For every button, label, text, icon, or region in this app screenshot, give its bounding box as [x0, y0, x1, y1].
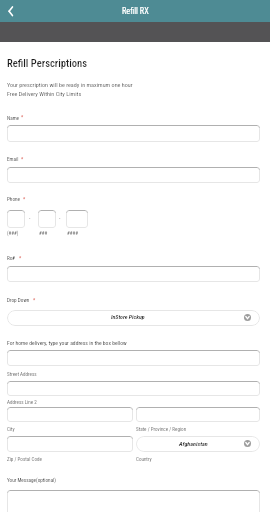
staticText: Refill RX [122, 6, 149, 16]
button[interactable]: Back [3, 3, 19, 19]
button[interactable] [136, 407, 260, 422]
staticText: (###) [7, 230, 19, 236]
staticText: State / Province / Region [136, 426, 187, 432]
button[interactable] [7, 167, 260, 183]
staticText: InStore Pickup [111, 314, 145, 321]
staticText: Your prescription will be ready in maxim… [7, 81, 133, 88]
staticText: * [23, 196, 26, 202]
staticText: Refill Perscriptions [7, 57, 88, 69]
staticText: For home delivery, type your address in … [7, 340, 127, 347]
staticText: - [29, 215, 31, 221]
staticText: - [59, 215, 61, 221]
button[interactable] [7, 436, 133, 452]
staticText: Free Delivery Within City Limits [7, 90, 82, 97]
button[interactable]: Afghanistan [136, 436, 260, 452]
staticText: Rx# [7, 255, 15, 261]
button[interactable] [7, 125, 260, 142]
staticText: City [7, 426, 15, 432]
staticText: Your Message(optional) [7, 477, 56, 483]
button[interactable] [7, 381, 260, 396]
staticText: Afghanistan [179, 440, 208, 447]
staticText: * [21, 114, 24, 120]
button[interactable] [66, 210, 88, 228]
staticText: * [19, 255, 22, 261]
button[interactable] [38, 210, 56, 228]
button[interactable] [7, 266, 260, 282]
button[interactable]: InStore Pickup [7, 310, 260, 326]
staticText: * [33, 297, 36, 303]
staticText: ### [39, 230, 48, 236]
staticText: Address Line 2 [7, 399, 37, 405]
staticText: Name [7, 115, 20, 121]
button[interactable] [7, 350, 260, 366]
staticText: Email [7, 156, 19, 162]
staticText: * [21, 156, 24, 162]
staticText: Country [136, 456, 152, 462]
staticText: Zip / Postal Code [7, 456, 42, 462]
staticText: Drop Down [7, 297, 30, 303]
staticText: #### [67, 230, 78, 236]
button[interactable] [7, 407, 133, 422]
button[interactable] [7, 490, 260, 512]
staticText: Phone [7, 196, 20, 202]
staticText: Street Address [7, 371, 37, 377]
button[interactable] [7, 210, 25, 228]
